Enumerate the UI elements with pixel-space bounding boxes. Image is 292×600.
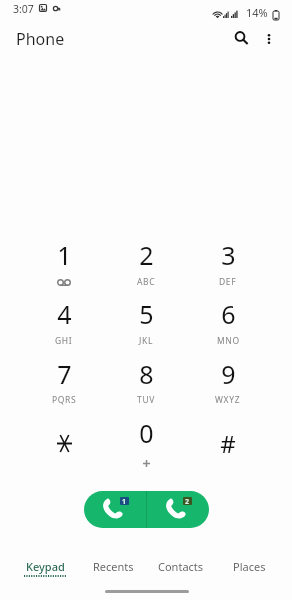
button[interactable]: Recents [79, 548, 147, 584]
button[interactable]: 2 [109, 236, 183, 295]
staticText: Keypad [26, 559, 65, 574]
button[interactable]: 0 [109, 414, 183, 473]
button[interactable]: pound [191, 414, 265, 473]
staticText: 9 [221, 357, 236, 387]
staticText: 1 [122, 497, 127, 505]
staticText: GHI [55, 335, 73, 347]
button[interactable]: 3 [191, 236, 265, 295]
button[interactable]: Call using SIM 1 [84, 491, 146, 528]
button[interactable]: 1 [27, 236, 101, 295]
button[interactable]: Call using SIM 2 [147, 491, 209, 528]
button[interactable]: Places [215, 548, 283, 584]
staticText: Recents [93, 559, 134, 574]
staticText: JKL [139, 335, 153, 347]
staticText: 5 [139, 297, 154, 327]
staticText: 14% [246, 5, 268, 20]
button[interactable]: 7 [27, 354, 101, 413]
button[interactable]: 6 [191, 295, 265, 354]
staticText: 6 [221, 297, 236, 327]
staticText: PQRS [52, 394, 77, 406]
button[interactable]: Keypad [11, 548, 79, 584]
staticText: 4 [57, 297, 72, 327]
staticText: WXYZ [215, 394, 241, 406]
staticText: 8 [139, 357, 154, 387]
button[interactable]: Search [224, 22, 258, 56]
button[interactable]: 4 [27, 295, 101, 354]
button[interactable]: 5 [109, 295, 183, 354]
button[interactable]: 8 [109, 354, 183, 413]
staticText: ABC [137, 276, 156, 288]
staticText: 0 [139, 416, 154, 446]
staticText: 2 [139, 238, 154, 268]
button[interactable]: 9 [191, 354, 265, 413]
button[interactable]: More options [252, 22, 286, 56]
staticText: # [220, 427, 236, 457]
staticText: 1 [57, 238, 72, 268]
button[interactable]: Contacts [147, 548, 215, 584]
staticText: 3:07 [13, 2, 34, 16]
staticText: 3 [221, 238, 236, 268]
staticText: Contacts [158, 559, 204, 574]
staticText: MNO [217, 335, 240, 347]
staticText: 2 [185, 497, 190, 505]
staticText: Places [233, 559, 266, 574]
button[interactable]: star [27, 414, 101, 473]
staticText: 7 [57, 357, 72, 387]
staticText: Phone [16, 28, 65, 50]
staticText: TUV [137, 394, 155, 406]
staticText: DEF [219, 276, 237, 288]
